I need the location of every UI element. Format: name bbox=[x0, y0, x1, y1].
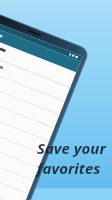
staticText: favorites bbox=[37, 158, 101, 178]
button[interactable]: Save your bbox=[37, 138, 106, 178]
staticText: Save your bbox=[37, 138, 106, 158]
other: Phone showing favorites list bbox=[0, 0, 112, 200]
